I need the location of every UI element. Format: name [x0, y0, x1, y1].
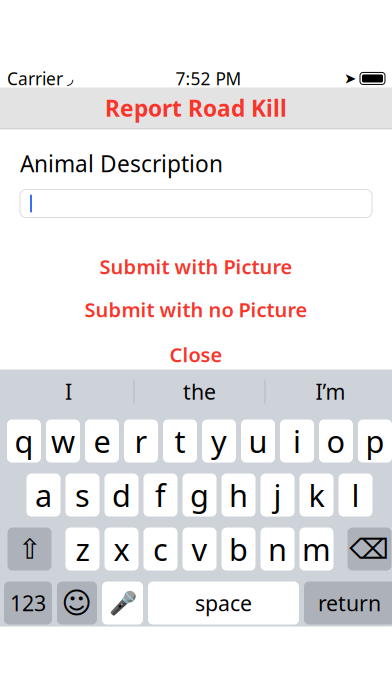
button[interactable]: n — [260, 528, 294, 571]
staticText: f — [155, 475, 166, 515]
staticText: Close — [169, 341, 222, 368]
staticText: s — [75, 475, 90, 515]
button[interactable]: e — [85, 420, 119, 463]
staticText: 123 — [10, 589, 46, 617]
staticText: c — [153, 529, 168, 569]
staticText: q — [14, 421, 33, 461]
staticText: w — [51, 421, 75, 461]
button[interactable]: Emoji — [57, 582, 97, 625]
staticText: ➤ — [344, 70, 356, 87]
button[interactable]: k — [299, 474, 333, 517]
staticText: Submit with no Picture — [84, 296, 307, 323]
staticText: ☺ — [61, 586, 92, 620]
staticText: return — [318, 589, 381, 617]
staticText: ⌫ — [349, 533, 389, 565]
staticText: x — [113, 529, 129, 569]
button[interactable]: Delete — [347, 528, 391, 571]
button[interactable]: Close — [0, 340, 392, 370]
button[interactable]: space — [148, 582, 299, 625]
button[interactable]: I — [3, 370, 133, 414]
button[interactable]: o — [319, 420, 353, 463]
staticText: u — [248, 421, 267, 461]
button[interactable]: d — [104, 474, 138, 517]
button[interactable]: p — [358, 420, 392, 463]
button[interactable]: a — [26, 474, 60, 517]
button[interactable]: y — [202, 420, 236, 463]
button[interactable]: v — [182, 528, 216, 571]
button[interactable]: t — [163, 420, 197, 463]
staticText: t — [174, 421, 185, 461]
button[interactable]: Submit with no Picture — [0, 295, 392, 325]
button[interactable]: the — [134, 370, 264, 414]
staticText: g — [190, 475, 209, 515]
staticText: d — [112, 475, 131, 515]
button[interactable]: x — [104, 528, 138, 571]
staticText: Animal Description — [20, 148, 223, 178]
staticText: 7:52 PM — [175, 67, 241, 90]
staticText: y — [211, 421, 227, 461]
button[interactable]: Shift — [7, 528, 51, 571]
staticText: the — [183, 377, 216, 406]
button[interactable]: h — [221, 474, 255, 517]
staticText: 🎤 — [108, 590, 136, 616]
button[interactable]: l — [338, 474, 372, 517]
staticText: v — [191, 529, 207, 569]
staticText: z — [75, 529, 89, 569]
staticText: n — [268, 529, 287, 569]
button[interactable]: f — [143, 474, 177, 517]
staticText: b — [229, 529, 248, 569]
button[interactable]: i — [280, 420, 314, 463]
button[interactable]: c — [143, 528, 177, 571]
button[interactable]: I’m — [265, 370, 392, 414]
button[interactable]: m — [299, 528, 333, 571]
button[interactable]: b — [221, 528, 255, 571]
staticText: i — [293, 421, 301, 461]
staticText: a — [35, 475, 52, 515]
staticText: Submit with Picture — [99, 253, 292, 280]
staticText: ⇧ — [18, 533, 41, 565]
button[interactable]: z — [65, 528, 99, 571]
button[interactable]: j — [260, 474, 294, 517]
button[interactable]: w — [46, 420, 80, 463]
button[interactable]: u — [241, 420, 275, 463]
button[interactable]: 123 — [4, 582, 52, 625]
button[interactable]: Submit with Picture — [0, 252, 392, 282]
staticText: space — [195, 589, 252, 617]
staticText: k — [308, 475, 324, 515]
staticText: l — [351, 475, 359, 515]
button[interactable]: Dictate — [102, 582, 143, 625]
staticText: h — [229, 475, 248, 515]
staticText: I’m — [315, 377, 345, 406]
button[interactable]: r — [124, 420, 158, 463]
button[interactable]: q — [7, 420, 41, 463]
staticText: p — [365, 421, 384, 461]
staticText: Report Road Kill — [105, 93, 287, 123]
button[interactable]: g — [182, 474, 216, 517]
button[interactable]: s — [65, 474, 99, 517]
staticText: o — [326, 421, 345, 461]
staticText: I — [65, 377, 72, 406]
staticText: m — [302, 529, 331, 569]
staticText: j — [273, 475, 281, 515]
staticText: e — [93, 421, 110, 461]
staticText: r — [134, 421, 147, 461]
button[interactable]: return — [304, 582, 392, 625]
staticText: Carrier — [7, 67, 63, 90]
staticText: ◞ — [67, 69, 73, 88]
